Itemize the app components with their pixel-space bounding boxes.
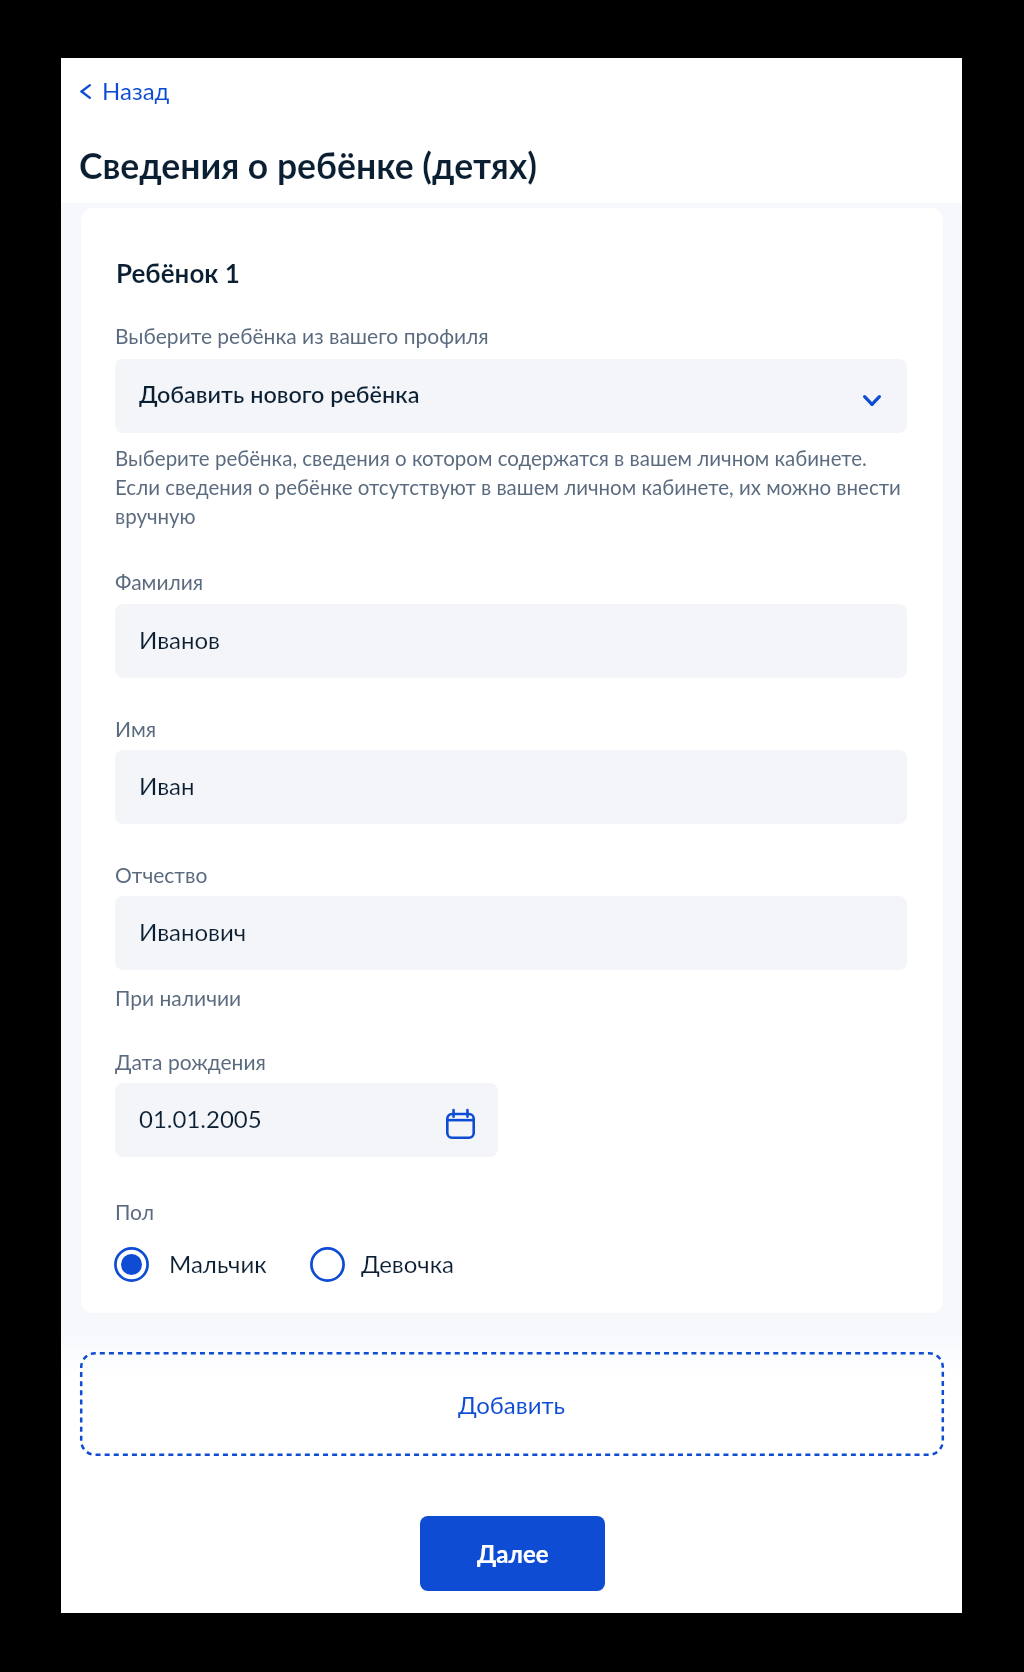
staticText: Отчество [115,862,208,887]
button[interactable] [115,1083,498,1157]
button[interactable] [115,359,907,433]
button[interactable]: Выбрать дату [433,1097,487,1151]
staticText: Имя [115,716,157,741]
button[interactable]: Добавить [80,1352,944,1456]
button[interactable] [115,750,907,824]
staticText: Пол [115,1199,154,1224]
staticText: 01.01.2005 [139,1104,262,1133]
staticText: Дата рождения [115,1049,266,1074]
staticText: При наличии [115,985,242,1010]
button[interactable] [115,604,907,678]
staticText: Мальчик [169,1249,267,1278]
button[interactable] [109,1239,279,1289]
staticText: Выберите ребёнка, сведения о котором сод… [115,446,905,528]
staticText: Далее [477,1539,549,1568]
staticText: Добавить [458,1390,566,1419]
staticText: Назад [102,76,170,105]
staticText: Иванов [139,625,221,654]
staticText: Сведения о ребёнке (детях) [79,144,537,187]
staticText: Девочка [361,1249,455,1278]
button[interactable]: Далее [420,1516,605,1591]
staticText: Ребёнок 1 [116,257,240,288]
button[interactable]: Назад [71,66,185,118]
other: Раскрыть список [851,382,893,418]
button[interactable] [305,1239,471,1289]
staticText: Иванович [139,917,247,946]
staticText: Иван [139,771,195,800]
staticText: Добавить нового ребёнка [139,380,420,408]
staticText: Фамилия [115,569,204,594]
button[interactable] [115,896,907,970]
staticText: Выберите ребёнка из вашего профиля [115,323,489,348]
